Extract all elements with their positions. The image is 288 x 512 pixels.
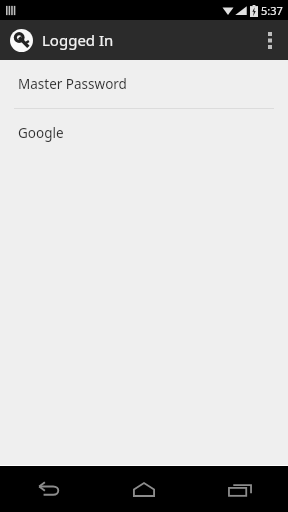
button[interactable]: Back bbox=[0, 466, 96, 512]
staticText: Google bbox=[18, 124, 64, 142]
staticText: Master Password bbox=[18, 75, 127, 93]
staticText: 5:37 bbox=[261, 3, 283, 18]
button[interactable]: Google bbox=[0, 109, 288, 157]
staticText: Logged In bbox=[42, 30, 114, 50]
button[interactable]: Recent apps bbox=[192, 466, 288, 512]
button[interactable]: Master Password bbox=[0, 60, 288, 108]
button[interactable]: Home bbox=[96, 466, 192, 512]
button[interactable]: More options bbox=[252, 20, 288, 60]
button[interactable]: App icon, navigate up bbox=[8, 27, 34, 53]
